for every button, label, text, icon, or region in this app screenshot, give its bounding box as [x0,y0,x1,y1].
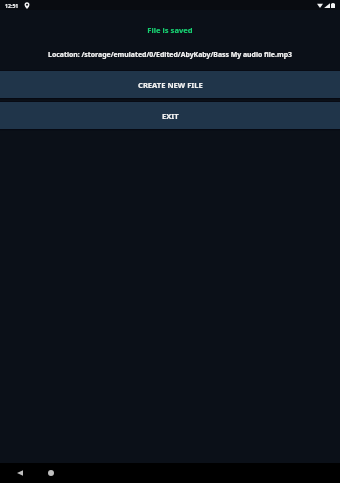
staticText: File is saved [0,25,340,35]
staticText: CREATE NEW FILE [138,80,203,90]
button[interactable]: CREATE NEW FILE [0,71,340,98]
button[interactable]: Home [43,463,59,483]
button[interactable]: Back [12,463,28,483]
staticText: EXIT [162,111,179,121]
staticText: 12:51 [5,2,19,9]
staticText: Location: /storage/emulated/0/Edited/Aby… [0,50,340,59]
button[interactable]: EXIT [0,102,340,129]
